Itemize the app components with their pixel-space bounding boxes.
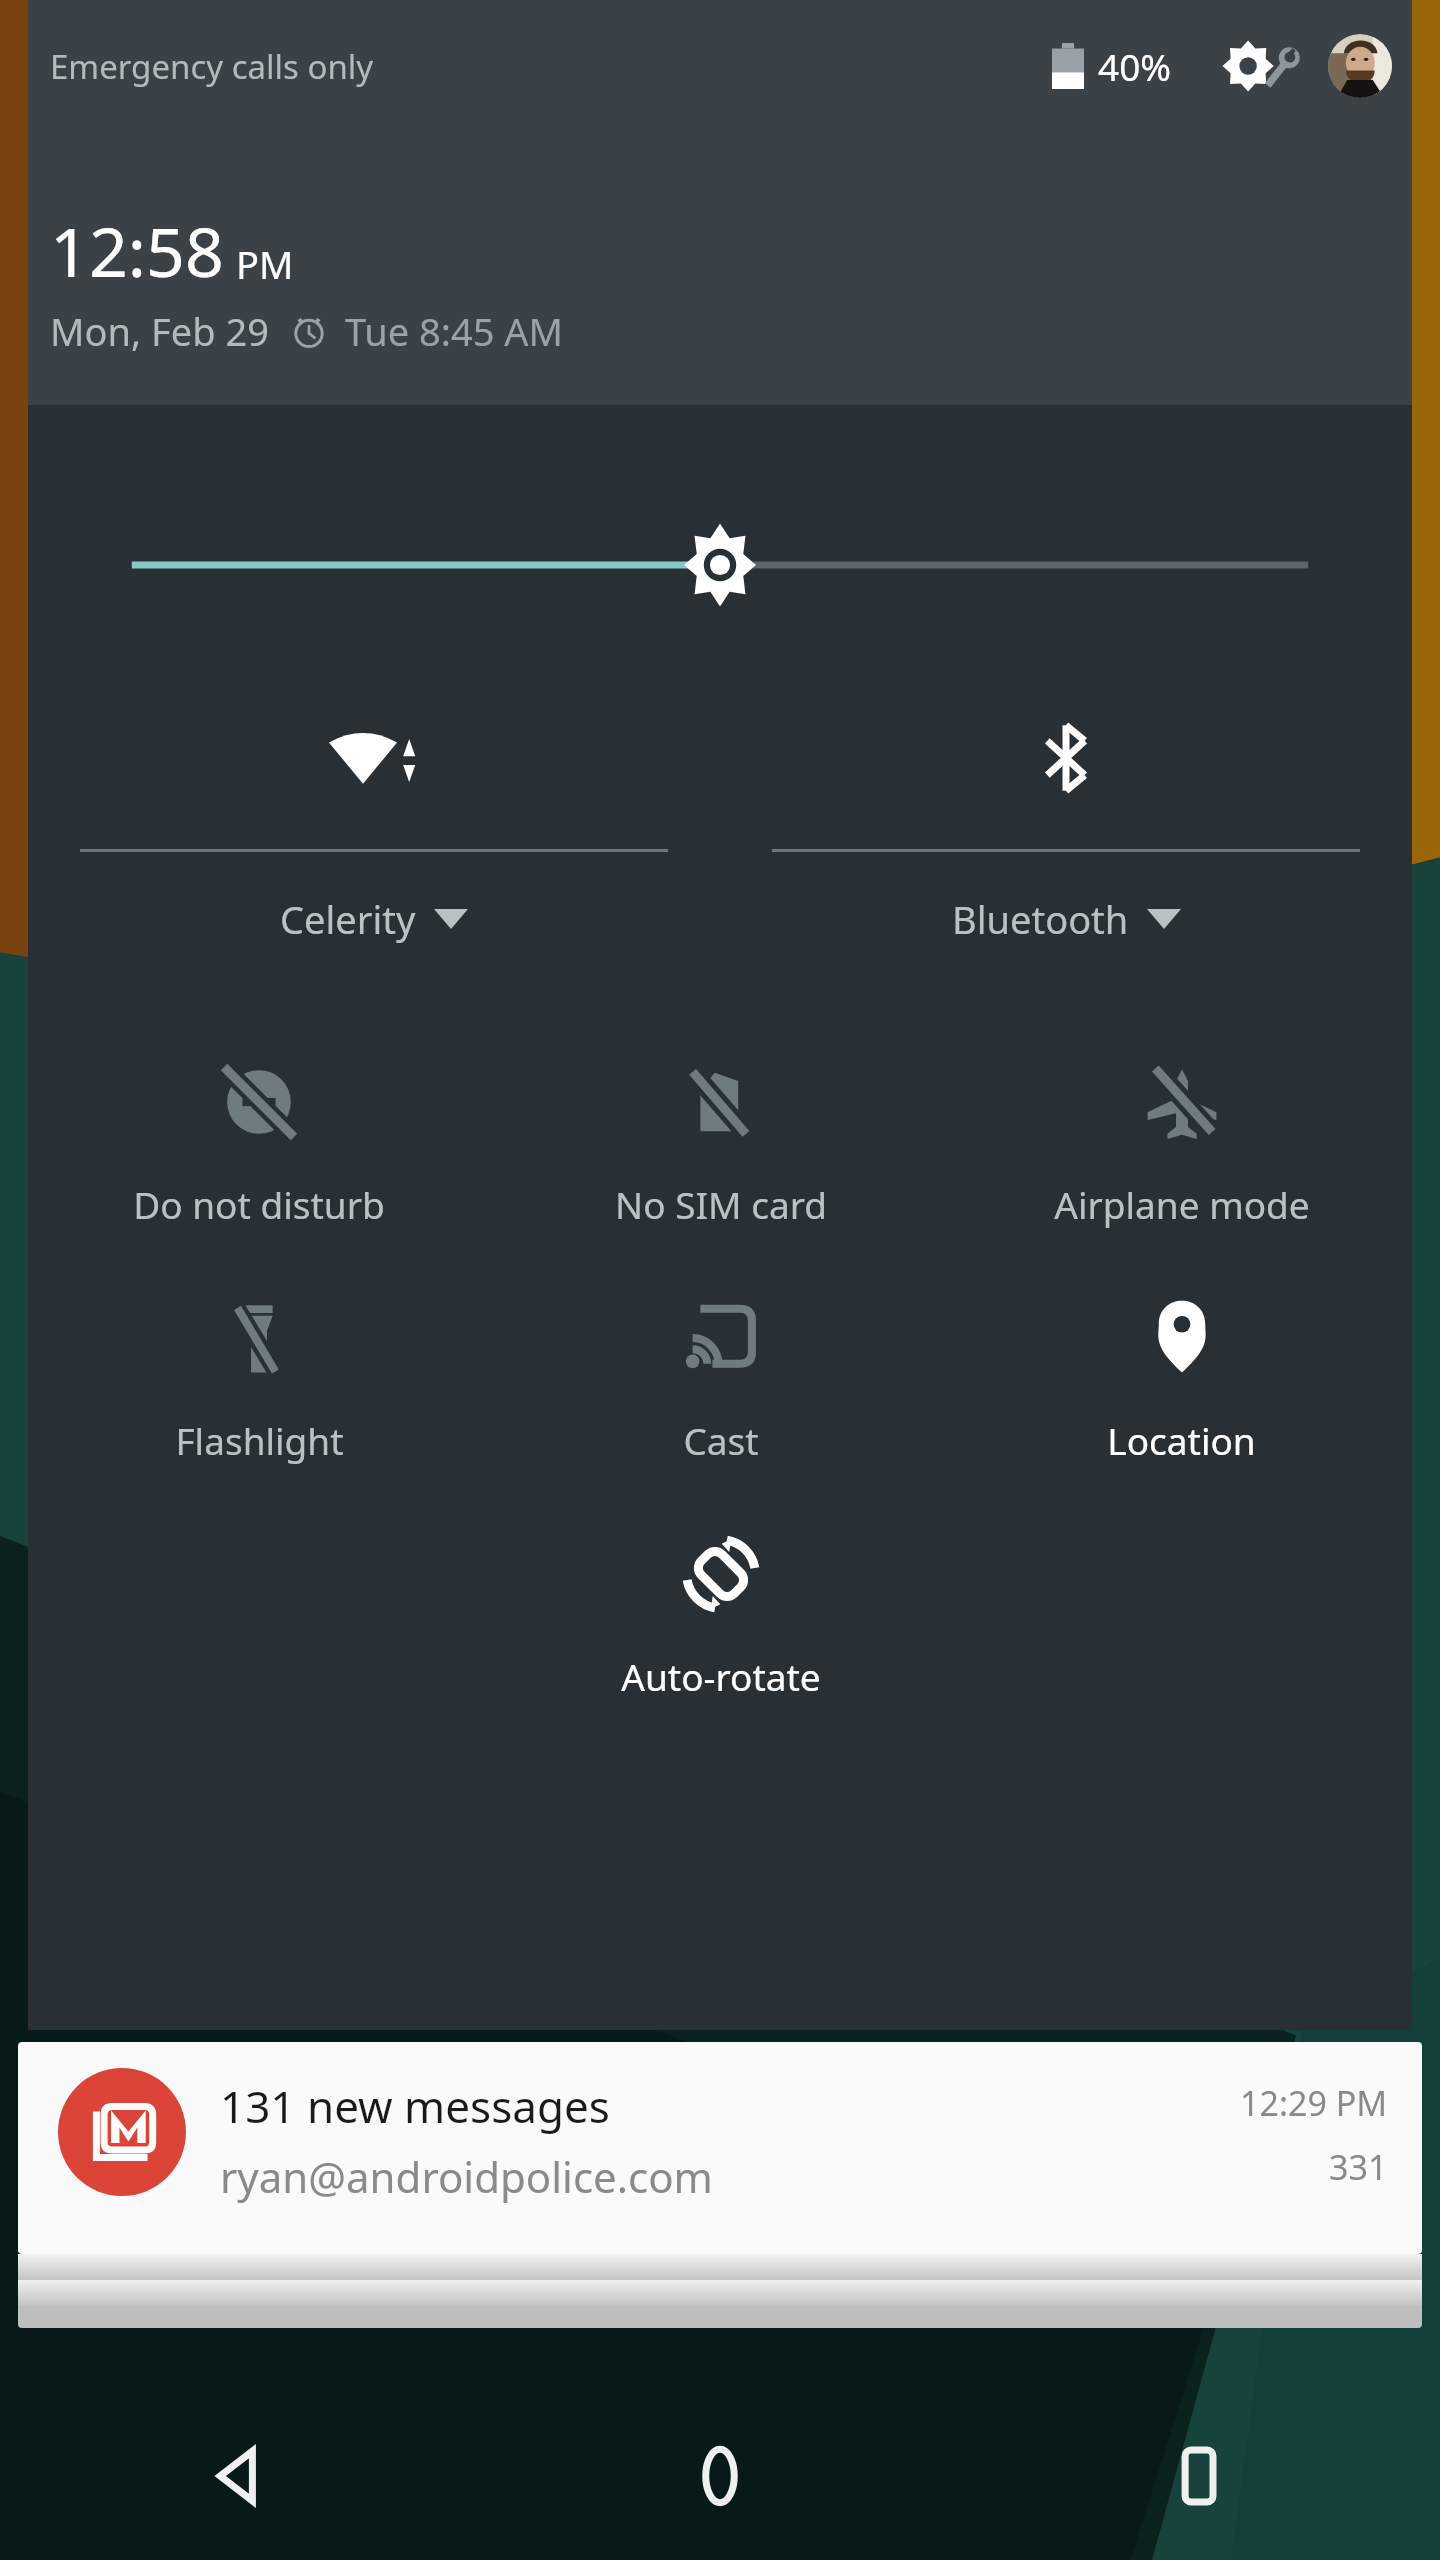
button[interactable]: Brightness	[28, 510, 1412, 620]
button[interactable]	[18, 2254, 1422, 2280]
staticText: 12:29 PM	[1240, 2080, 1388, 2126]
staticText: Emergency calls only	[50, 44, 374, 89]
button[interactable]: Flashlight	[28, 1281, 490, 1479]
staticText: Tue 8:45 AM	[345, 305, 564, 357]
staticText: Location	[1107, 1415, 1256, 1465]
staticText: 331	[1329, 2144, 1388, 2190]
button[interactable]: 131 new messages	[18, 2042, 1422, 2254]
staticText: Bluetooth	[952, 893, 1129, 945]
staticText: No SIM card	[615, 1179, 827, 1229]
button[interactable]: User profile	[1328, 34, 1392, 98]
staticText: Airplane mode	[1054, 1179, 1310, 1229]
button[interactable]: Bluetooth	[720, 715, 1412, 945]
button[interactable]	[18, 2280, 1422, 2306]
staticText: Celerity	[280, 893, 416, 945]
staticText: PM	[236, 238, 294, 290]
button[interactable]: Auto-rotate	[490, 1517, 951, 1715]
staticText: 12:58	[50, 204, 224, 297]
button[interactable]: Airplane mode	[951, 1045, 1412, 1243]
button[interactable]: No SIM card	[490, 1045, 951, 1243]
staticText: Cast	[683, 1415, 759, 1465]
button[interactable]: Cast	[490, 1281, 951, 1479]
staticText: 40%	[1098, 41, 1172, 91]
button[interactable]: Recent apps	[960, 2392, 1440, 2560]
staticText: Auto-rotate	[621, 1651, 821, 1701]
button[interactable]: Home	[480, 2392, 960, 2560]
staticText: ryan@androidpolice.com	[220, 2148, 713, 2205]
button[interactable]: 12:58	[50, 204, 564, 357]
staticText: Mon, Feb 29	[50, 305, 269, 357]
staticText: Flashlight	[175, 1415, 344, 1465]
button[interactable]: Do not disturb	[28, 1045, 490, 1243]
staticText: 131 new messages	[220, 2076, 610, 2136]
button[interactable]: Settings	[1218, 34, 1304, 98]
button[interactable]: Celerity	[28, 715, 720, 945]
staticText: Do not disturb	[133, 1179, 385, 1229]
button[interactable]: Back	[0, 2392, 480, 2560]
button[interactable]: Location	[951, 1281, 1412, 1479]
